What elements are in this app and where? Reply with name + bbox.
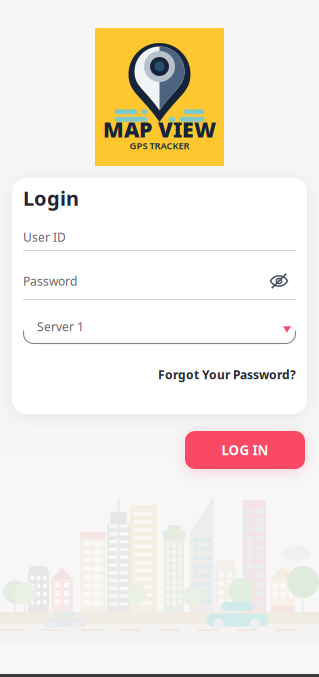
staticText: Login [23, 185, 79, 211]
button[interactable]: Forgot Your Password? [158, 366, 296, 382]
staticText: GPS TRACKER [129, 139, 189, 152]
staticText: User ID [23, 229, 66, 245]
staticText: Password [23, 273, 77, 289]
staticText: Forgot Your Password? [158, 366, 296, 382]
staticText: LOG IN [221, 441, 268, 459]
button[interactable]: LOG IN [185, 431, 305, 469]
staticText: MAP VIEW [103, 115, 216, 143]
staticText: Server 1 [37, 318, 84, 334]
